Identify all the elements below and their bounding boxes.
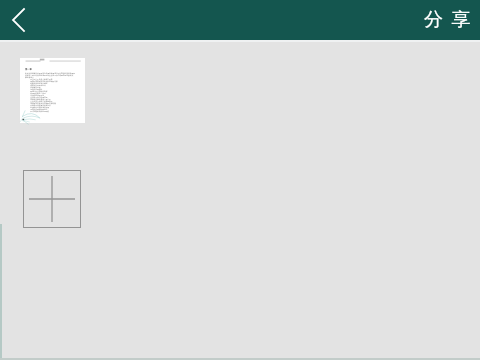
staticText: 本办法所称项目管理是指为实现目标而进行的计划组织指挥协调和	[25, 72, 75, 74]
staticText: 预算经审批通过变更须申请验收专家	[25, 80, 58, 82]
staticText: 高效率实施应遵循公开公平	[25, 98, 51, 100]
button[interactable]: 分享	[410, 8, 480, 32]
staticText: 者将予以处理本办法	[25, 84, 46, 86]
button[interactable]: Document page 1	[20, 58, 85, 123]
staticText: 控制等一系列活动总称适用于单位全部工作内容规范提高效率实	[25, 74, 74, 76]
button[interactable]: Add page	[23, 170, 81, 228]
staticText: 分享	[424, 8, 480, 32]
staticText: 处理本办法所称项目管理	[25, 106, 50, 108]
staticText: 妥善保管违反规定者将予以	[25, 104, 51, 106]
staticText: 位全部工作内容规范提	[25, 96, 48, 98]
staticText: 公正负责人由部门推荐预算经	[25, 100, 53, 102]
staticText: 档案妥善保管违反规定	[25, 82, 48, 84]
staticText: 施应遵循公	[25, 76, 34, 78]
staticText: 而进行的计划组织指挥	[25, 90, 48, 92]
staticText: 是指为实现目标	[25, 88, 43, 90]
staticText: 所称项目管理	[25, 86, 41, 88]
staticText: 是指为实现目标而进行	[25, 108, 48, 110]
staticText: 活动总称适用于单	[25, 94, 44, 96]
staticText: 审批通过变更须申请验收专家档案	[25, 102, 56, 104]
staticText: 的计划组织指挥协调和控	[25, 110, 50, 112]
staticText: 第一章	[25, 68, 32, 71]
staticText: 开公平公正负责人由部门推荐	[25, 78, 53, 80]
staticText: 协调和控制等一系列	[25, 92, 46, 94]
button[interactable]: Back	[0, 0, 36, 40]
